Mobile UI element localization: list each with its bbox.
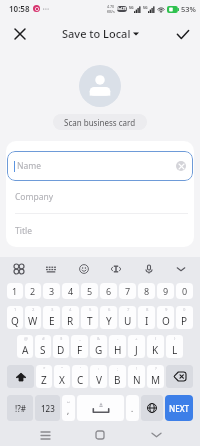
button[interactable]: ( (147, 335, 164, 358)
button[interactable]: ␣ (62, 395, 75, 421)
button[interactable]: 1 (7, 306, 23, 329)
staticText: P (181, 314, 188, 328)
button[interactable]: " (54, 365, 70, 388)
staticText: Company (15, 191, 54, 203)
button[interactable]: Hide keyboard (172, 260, 190, 278)
staticText: C (77, 373, 84, 387)
staticText: 0 (182, 285, 188, 297)
button[interactable]: 3 (43, 306, 60, 329)
staticText: O (162, 314, 170, 328)
button[interactable]: Title (6, 214, 194, 247)
staticText: ? (155, 366, 157, 372)
staticText: B (114, 373, 121, 387)
staticText: Title (15, 225, 32, 237)
staticText: 7 (127, 307, 130, 313)
button[interactable]: 0 (176, 283, 193, 299)
button[interactable]: 3 (43, 283, 60, 299)
button[interactable]: 8 (138, 306, 155, 329)
button[interactable]: ? (147, 365, 164, 388)
button[interactable]: * (36, 365, 52, 388)
button[interactable]: 9 (157, 306, 174, 329)
button[interactable]: $ (53, 335, 69, 358)
staticText: 5G (143, 5, 148, 10)
button[interactable]: 6 (100, 283, 117, 299)
button[interactable]: Add photo (79, 65, 121, 107)
staticText: U (124, 314, 132, 328)
staticText: K (152, 343, 159, 357)
button[interactable]: Change language (141, 395, 163, 421)
button[interactable]: . (126, 395, 139, 421)
staticText: 2 (30, 285, 36, 297)
staticText: 0 (183, 307, 186, 313)
button[interactable]: Emoji (75, 260, 93, 278)
button[interactable]: 7 (119, 283, 136, 299)
staticText: - (117, 336, 119, 342)
button[interactable]: ) (166, 335, 183, 358)
button[interactable]: Keyboard layout (42, 260, 60, 278)
button[interactable]: Clear (176, 161, 186, 171)
staticText: , (67, 405, 70, 416)
button[interactable]: NEXT (165, 395, 193, 421)
staticText: @ (24, 336, 28, 342)
staticText: 53% (181, 4, 196, 14)
button[interactable]: 4 (62, 283, 79, 299)
button[interactable]: - (109, 335, 126, 358)
staticText: N (133, 373, 141, 387)
button[interactable]: Recents (34, 424, 56, 446)
button[interactable]: Scan business card (53, 114, 147, 130)
button[interactable]: 123 (35, 395, 60, 421)
button[interactable]: 7 (119, 306, 136, 329)
button[interactable]: 2 (25, 283, 41, 299)
staticText: X (59, 373, 65, 387)
staticText: R (67, 314, 74, 328)
button[interactable]: 2 (25, 306, 41, 329)
button[interactable]: 0 (176, 306, 193, 329)
button[interactable]: _ (71, 335, 88, 358)
button[interactable]: # (35, 335, 51, 358)
button[interactable]: Space (77, 395, 124, 421)
button[interactable]: Close (6, 20, 34, 48)
button[interactable]: : (90, 365, 107, 388)
button[interactable]: !?# (7, 395, 33, 421)
button[interactable]: 5 (81, 306, 98, 329)
staticText: 1 (14, 307, 17, 313)
button[interactable]: ; (109, 365, 126, 388)
button[interactable]: 9 (157, 283, 174, 299)
staticText: 2 (32, 307, 35, 313)
staticText: + (135, 336, 138, 342)
staticText: _ (79, 336, 81, 342)
staticText: A (22, 343, 29, 357)
button[interactable]: + (128, 335, 145, 358)
button[interactable]: 6 (100, 306, 117, 329)
staticText: 6 (106, 285, 112, 297)
button[interactable]: Save (169, 20, 197, 48)
staticText: M (151, 373, 161, 387)
staticText: ' (80, 366, 81, 372)
button[interactable]: 4 (62, 306, 79, 329)
button[interactable]: 5 (81, 283, 98, 299)
button[interactable]: ' (72, 365, 88, 388)
staticText: " (61, 366, 63, 372)
staticText: D (57, 343, 65, 357)
button[interactable]: Home (89, 424, 111, 446)
button[interactable]: & (90, 335, 107, 358)
staticText: 123 (41, 403, 55, 414)
staticText: 4 (68, 285, 74, 297)
button[interactable]: Back (145, 424, 167, 446)
staticText: L (172, 343, 178, 357)
staticText: 5 (89, 307, 92, 313)
button[interactable]: Backspace (166, 365, 193, 388)
staticText: W (28, 314, 38, 328)
button[interactable]: Save to Local (56, 22, 145, 45)
button[interactable]: Apps (10, 260, 28, 278)
button[interactable]: Voice input (140, 260, 158, 278)
button[interactable]: ! (128, 365, 145, 388)
button[interactable]: Shift (7, 365, 34, 388)
button[interactable]: Name (7, 151, 193, 181)
button[interactable]: @ (17, 335, 33, 358)
staticText: KB/s (107, 9, 115, 14)
button[interactable]: Company (6, 181, 194, 214)
button[interactable]: 8 (138, 283, 155, 299)
button[interactable]: 1 (7, 283, 23, 299)
button[interactable]: Text edit (107, 260, 125, 278)
